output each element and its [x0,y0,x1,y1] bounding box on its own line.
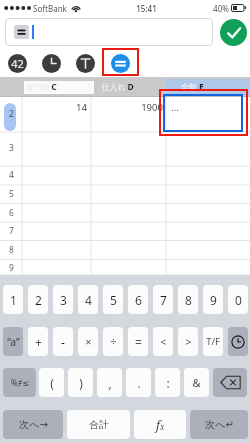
staticText: ÷ [110,334,117,349]
button[interactable]: × [78,327,98,356]
staticText: 4 [85,292,92,308]
staticText: 0 [235,292,242,308]
staticText: D [127,81,134,93]
button[interactable]: Backspace [213,368,247,397]
button[interactable]: 6 [0,206,22,220]
button[interactable]: < [153,327,173,356]
staticText: 9 [210,292,217,308]
button[interactable]: Formula [111,54,130,73]
staticText: 1 [10,292,17,308]
staticText: 15:41 [136,3,157,14]
button[interactable]: 6 [128,285,148,314]
staticText: 2 [9,108,14,120]
staticText: 5 [9,188,14,200]
button[interactable]: 0 [228,285,248,314]
staticText: - [61,334,65,350]
button[interactable]: 1 [3,285,23,314]
button[interactable]: Function [134,410,186,439]
staticText: f [156,417,160,433]
staticText: ) [79,375,83,391]
button[interactable]: Date and time [42,54,61,73]
staticText: 7 [9,225,14,237]
button[interactable] [5,18,213,46]
staticText: × [85,334,92,349]
button[interactable]: Text [76,54,95,73]
staticText: 14 [76,101,87,114]
staticText: 8 [9,244,14,256]
staticText: & [192,375,201,390]
button[interactable]: Confirm entry [220,19,247,46]
staticText: ( [50,375,54,391]
button[interactable]: %≠≤ [3,368,36,397]
button[interactable]: 7 [153,285,173,314]
staticText: 42 [11,56,24,71]
button[interactable]: 5 [0,187,22,201]
staticText: 6 [9,207,14,219]
staticText: C [51,81,57,93]
staticText: < [160,334,167,349]
staticText: = [135,334,142,350]
staticText: 仕入れ [101,82,126,92]
staticText: SoftBank [33,3,67,14]
staticText: 次へ↵ [205,418,234,431]
staticText: “a” [7,335,20,349]
button[interactable]: Time [228,327,248,356]
staticText: 6 [135,292,142,308]
button[interactable]: 8 [178,285,198,314]
button[interactable]: ÷ [103,327,123,356]
button[interactable]: 8 [0,243,22,257]
button[interactable]: 42 number format [8,54,27,73]
button[interactable] [163,94,243,132]
button[interactable]: 2 [28,285,48,314]
button[interactable]: + [28,327,48,356]
staticText: 3 [60,292,67,308]
staticText: x [160,421,165,432]
staticText: 9 [9,262,14,274]
button[interactable]: 合計 [67,410,130,439]
staticText: 7 [160,292,167,308]
button[interactable]: 4 [0,168,22,182]
button[interactable]: 4 [78,285,98,314]
staticText: , [108,375,112,391]
button[interactable]: 9 [203,285,223,314]
staticText: 金額 [181,82,197,92]
button[interactable]: 3 [53,285,73,314]
staticText: . [137,375,141,391]
button[interactable]: , [97,368,122,397]
staticText: 4 [9,169,14,181]
staticText: > [185,334,192,349]
button[interactable]: = [128,327,148,356]
staticText: %≠≤ [11,377,29,388]
staticText: 販売数 [26,82,50,92]
staticText: : [166,375,170,391]
button[interactable]: > [178,327,198,356]
staticText: 40% [213,3,229,14]
staticText: 3 [9,142,14,154]
staticText: 2 [35,292,42,308]
staticText: + [35,334,42,350]
button[interactable]: : [155,368,180,397]
button[interactable]: 9 [0,261,22,275]
staticText: E [199,81,204,93]
button[interactable]: . [126,368,151,397]
button[interactable]: 3 [0,141,22,155]
staticText: 次へ→ [19,418,48,431]
button[interactable]: ( [39,368,64,397]
staticText: T/F [206,335,220,348]
button[interactable]: 次へ→ [3,410,63,439]
staticText: 1900 [141,101,163,114]
button[interactable]: ) [68,368,93,397]
staticText: 合計 [89,418,109,431]
button[interactable]: “a” [3,327,23,356]
button[interactable]: 7 [0,224,22,238]
button[interactable]: 次へ↵ [190,410,248,439]
button[interactable]: 5 [103,285,123,314]
staticText: 5 [110,292,117,308]
button[interactable]: 2 [0,107,22,121]
button[interactable]: - [53,327,73,356]
button[interactable]: & [184,368,209,397]
button[interactable]: T/F [203,327,223,356]
staticText: ... [171,101,179,114]
staticText: 8 [185,292,192,308]
